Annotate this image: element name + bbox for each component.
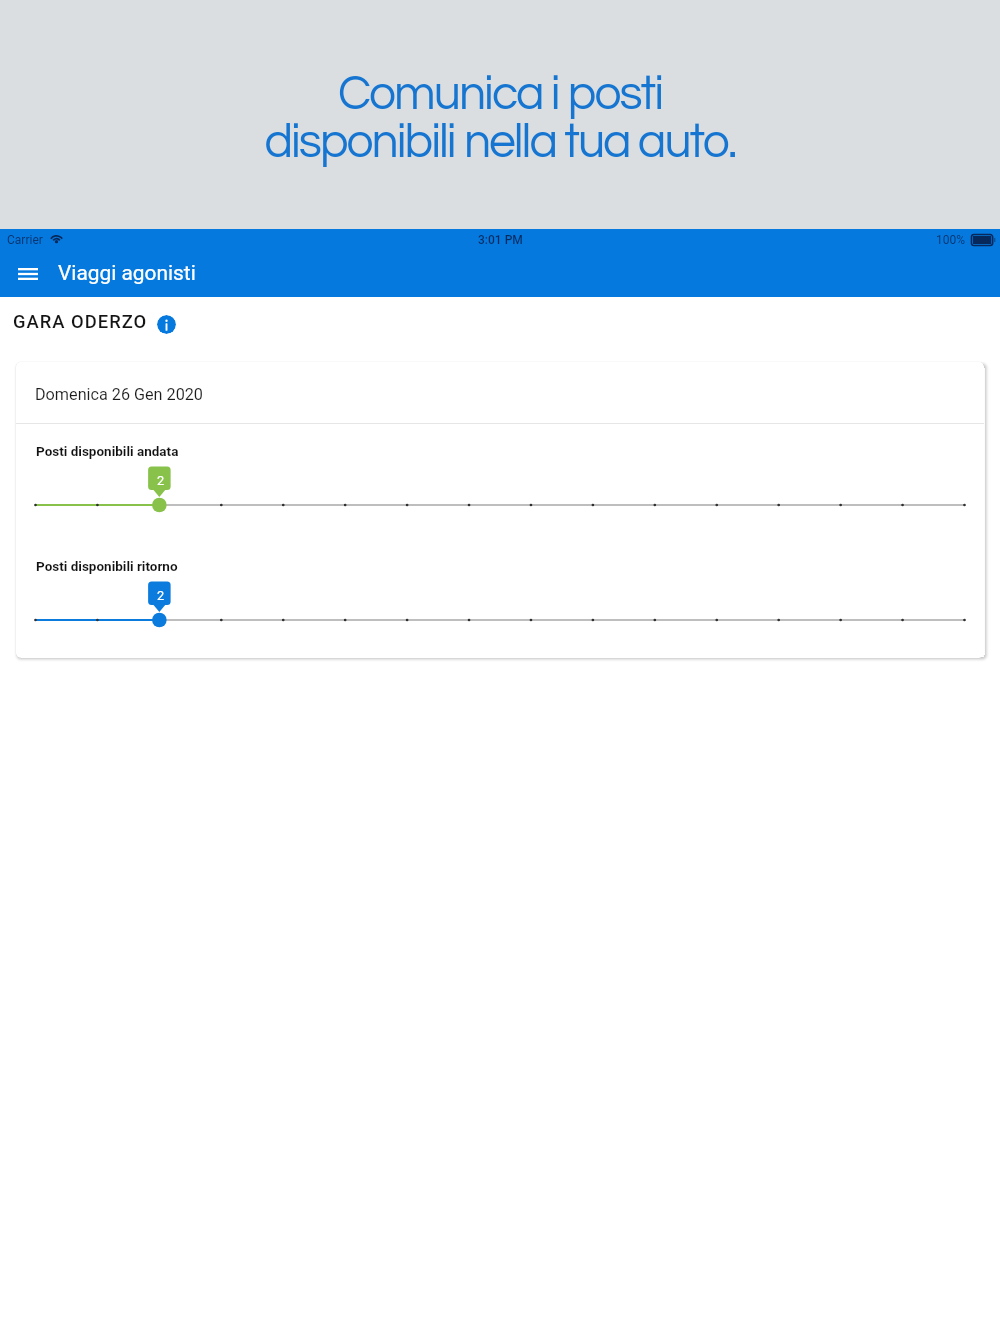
staticText: Carrier (7, 233, 43, 247)
staticText: 3:01 PM (478, 233, 523, 247)
button[interactable]: 2 (35, 580, 965, 636)
staticText: Domenica 26 Gen 2020 (35, 385, 203, 404)
staticText: Comunica i posti disponibili nella tua a… (264, 70, 736, 167)
button[interactable]: Info (157, 315, 176, 334)
staticText: Posti disponibili andata (36, 443, 179, 459)
button[interactable]: Open navigation menu (4, 251, 52, 297)
button[interactable]: Domenica 26 Gen 2020 (16, 362, 984, 658)
staticText: Viaggi agonisti (58, 261, 196, 285)
staticText: GARA ODERZO (13, 311, 148, 333)
staticText: 2 (157, 473, 165, 488)
button[interactable]: 2 (35, 465, 965, 521)
staticText: 100% (936, 233, 966, 247)
staticText: 2 (157, 588, 165, 603)
staticText: Posti disponibili ritorno (36, 558, 178, 574)
button[interactable]: GARA ODERZO (13, 312, 176, 334)
